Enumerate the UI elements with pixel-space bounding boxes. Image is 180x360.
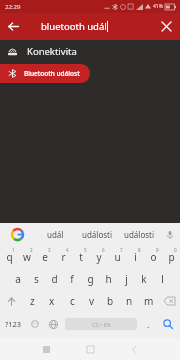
- staticText: w: [23, 250, 31, 264]
- button[interactable]: e: [36, 246, 54, 268]
- button[interactable]: x: [42, 290, 62, 312]
- staticText: l: [161, 272, 164, 286]
- staticText: CS • EN: [92, 321, 111, 328]
- staticText: n: [126, 294, 133, 308]
- staticText: ?123: [5, 319, 22, 329]
- staticText: .: [147, 318, 150, 330]
- staticText: 4: [66, 247, 69, 253]
- staticText: s: [34, 272, 39, 286]
- button[interactable]: Backspace: [158, 290, 180, 312]
- button[interactable]: .: [140, 312, 156, 336]
- staticText: h: [105, 272, 112, 286]
- staticText: 8: [138, 247, 141, 253]
- staticText: 5: [84, 247, 87, 253]
- button[interactable]: l: [153, 268, 171, 290]
- button[interactable]: c: [62, 290, 82, 312]
- button[interactable]: udál: [34, 223, 76, 246]
- button[interactable]: g: [81, 268, 99, 290]
- button[interactable]: m: [139, 290, 158, 312]
- staticText: 2: [30, 247, 33, 253]
- staticText: bluetooth udál: [41, 20, 107, 33]
- button[interactable]: Bluetooth událost: [0, 64, 90, 83]
- staticText: d: [51, 272, 58, 286]
- button[interactable]: n: [120, 290, 139, 312]
- button[interactable]: i: [126, 246, 144, 268]
- button[interactable]: r: [54, 246, 72, 268]
- button[interactable]: události: [76, 223, 118, 246]
- button[interactable]: t: [72, 246, 90, 268]
- button[interactable]: s: [27, 268, 45, 290]
- button[interactable]: události: [118, 223, 160, 246]
- staticText: p: [168, 250, 175, 264]
- staticText: c: [70, 294, 75, 308]
- staticText: i: [134, 250, 137, 264]
- button[interactable]: a: [9, 268, 27, 290]
- button[interactable]: Home: [68, 338, 112, 360]
- staticText: t: [79, 250, 83, 264]
- staticText: j: [125, 272, 128, 286]
- staticText: 0: [174, 247, 177, 253]
- button[interactable]: u: [108, 246, 126, 268]
- staticText: b: [107, 294, 114, 308]
- button[interactable]: h: [99, 268, 117, 290]
- staticText: q: [6, 250, 13, 264]
- button[interactable]: Shift: [0, 290, 22, 312]
- staticText: x: [49, 294, 55, 308]
- button[interactable]: b: [101, 290, 120, 312]
- button[interactable]: ?123: [0, 312, 26, 336]
- staticText: 22:29: [5, 3, 21, 11]
- staticText: 41%: [153, 3, 163, 10]
- staticText: o: [150, 250, 157, 264]
- staticText: udál: [47, 229, 64, 240]
- button[interactable]: Google: [0, 223, 34, 246]
- button[interactable]: Emoji: [26, 312, 44, 336]
- staticText: u: [114, 250, 121, 264]
- button[interactable]: f: [63, 268, 81, 290]
- staticText: v: [89, 294, 95, 308]
- button[interactable]: CS • EN: [65, 318, 137, 330]
- staticText: e: [42, 250, 48, 264]
- staticText: a: [15, 272, 21, 286]
- button[interactable]: k: [135, 268, 153, 290]
- staticText: 9: [156, 247, 159, 253]
- button[interactable]: w: [18, 246, 36, 268]
- staticText: 7: [120, 247, 123, 253]
- staticText: 6: [102, 247, 105, 253]
- button[interactable]: v: [82, 290, 101, 312]
- button[interactable]: z: [22, 290, 42, 312]
- staticText: 1: [12, 247, 15, 253]
- staticText: f: [70, 272, 74, 286]
- staticText: k: [141, 272, 147, 286]
- button[interactable]: Recents: [24, 338, 68, 360]
- staticText: události: [124, 229, 155, 240]
- staticText: z: [30, 294, 35, 308]
- button[interactable]: d: [45, 268, 63, 290]
- staticText: y: [96, 250, 102, 264]
- button[interactable]: q: [0, 246, 18, 268]
- button[interactable]: Clear search: [153, 13, 180, 40]
- button[interactable]: Voice input: [160, 223, 180, 246]
- staticText: m: [144, 294, 154, 308]
- button[interactable]: o: [144, 246, 162, 268]
- button[interactable]: j: [117, 268, 135, 290]
- button[interactable]: y: [90, 246, 108, 268]
- button[interactable]: Search: [156, 312, 180, 336]
- staticText: g: [87, 272, 94, 286]
- staticText: r: [61, 250, 66, 264]
- button[interactable]: p: [162, 246, 180, 268]
- button[interactable]: Back: [0, 13, 27, 40]
- staticText: Bluetooth událost: [24, 69, 80, 78]
- staticText: události: [82, 229, 113, 240]
- button[interactable]: Change language: [44, 312, 62, 336]
- staticText: 3: [48, 247, 51, 253]
- staticText: Konektivita: [27, 45, 77, 58]
